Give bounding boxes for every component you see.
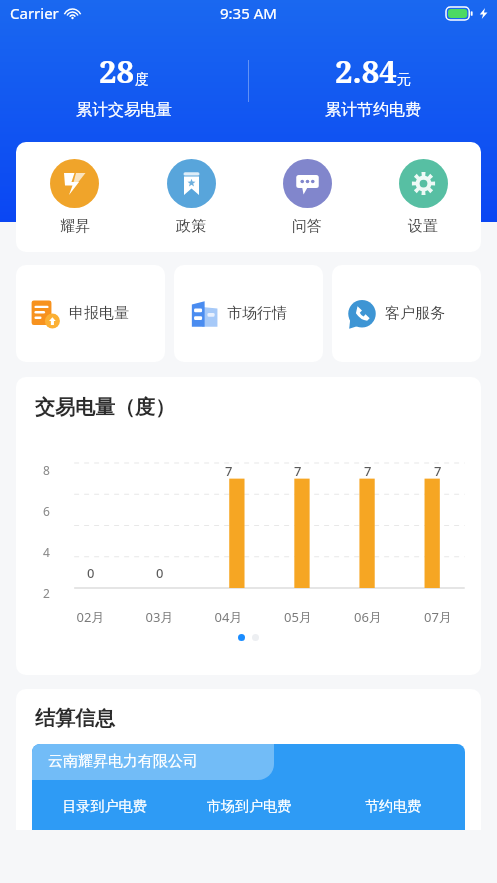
staticText: 8 bbox=[43, 462, 50, 478]
staticText: 6 bbox=[43, 503, 50, 519]
staticText: 度 bbox=[135, 71, 149, 89]
staticText: 2.84 bbox=[335, 50, 397, 92]
staticText: 04月 bbox=[194, 608, 263, 626]
button[interactable]: 市场行情 bbox=[174, 265, 323, 362]
staticText: 7 bbox=[364, 462, 372, 480]
staticText: 0 bbox=[156, 564, 164, 582]
staticText: 元 bbox=[397, 71, 411, 89]
button[interactable]: 申报电量 bbox=[16, 265, 165, 362]
staticText: 节约电费 bbox=[321, 798, 465, 816]
staticText: 9:35 AM bbox=[220, 3, 277, 23]
button[interactable]: 问答 bbox=[249, 142, 365, 252]
staticText: 累计节约电费 bbox=[325, 100, 421, 120]
button[interactable]: 政策 bbox=[133, 142, 249, 252]
staticText: 7 bbox=[434, 462, 442, 480]
staticText: 28 bbox=[99, 50, 135, 92]
staticText: 市场行情 bbox=[227, 304, 287, 323]
staticText: 云南耀昇电力有限公司 bbox=[48, 752, 198, 771]
staticText: 7 bbox=[294, 462, 302, 480]
staticText: 累计交易电量 bbox=[76, 100, 172, 120]
staticText: 06月 bbox=[333, 608, 403, 626]
staticText: 目录到户电费 bbox=[32, 798, 177, 816]
staticText: 2 bbox=[43, 585, 50, 601]
staticText: 耀昇 bbox=[60, 217, 90, 236]
staticText: 设置 bbox=[408, 217, 438, 236]
staticText: 客户服务 bbox=[385, 304, 445, 323]
button[interactable]: 云南耀昇电力有限公司 bbox=[32, 744, 274, 780]
staticText: 05月 bbox=[263, 608, 333, 626]
staticText: 交易电量（度） bbox=[35, 395, 175, 420]
staticText: 市场到户电费 bbox=[177, 798, 321, 816]
staticText: 4 bbox=[43, 544, 50, 560]
button[interactable]: 耀昇 bbox=[16, 142, 133, 252]
staticText: Carrier bbox=[10, 3, 59, 23]
staticText: 申报电量 bbox=[69, 304, 129, 323]
staticText: 政策 bbox=[176, 217, 206, 236]
staticText: 03月 bbox=[125, 608, 194, 626]
staticText: 结算信息 bbox=[35, 706, 115, 731]
staticText: 02月 bbox=[56, 608, 125, 626]
staticText: 7 bbox=[225, 462, 233, 480]
button[interactable]: 客户服务 bbox=[332, 265, 481, 362]
button[interactable]: 设置 bbox=[365, 142, 481, 252]
staticText: 0 bbox=[87, 564, 95, 582]
staticText: 07月 bbox=[403, 608, 473, 626]
staticText: 问答 bbox=[292, 217, 322, 236]
